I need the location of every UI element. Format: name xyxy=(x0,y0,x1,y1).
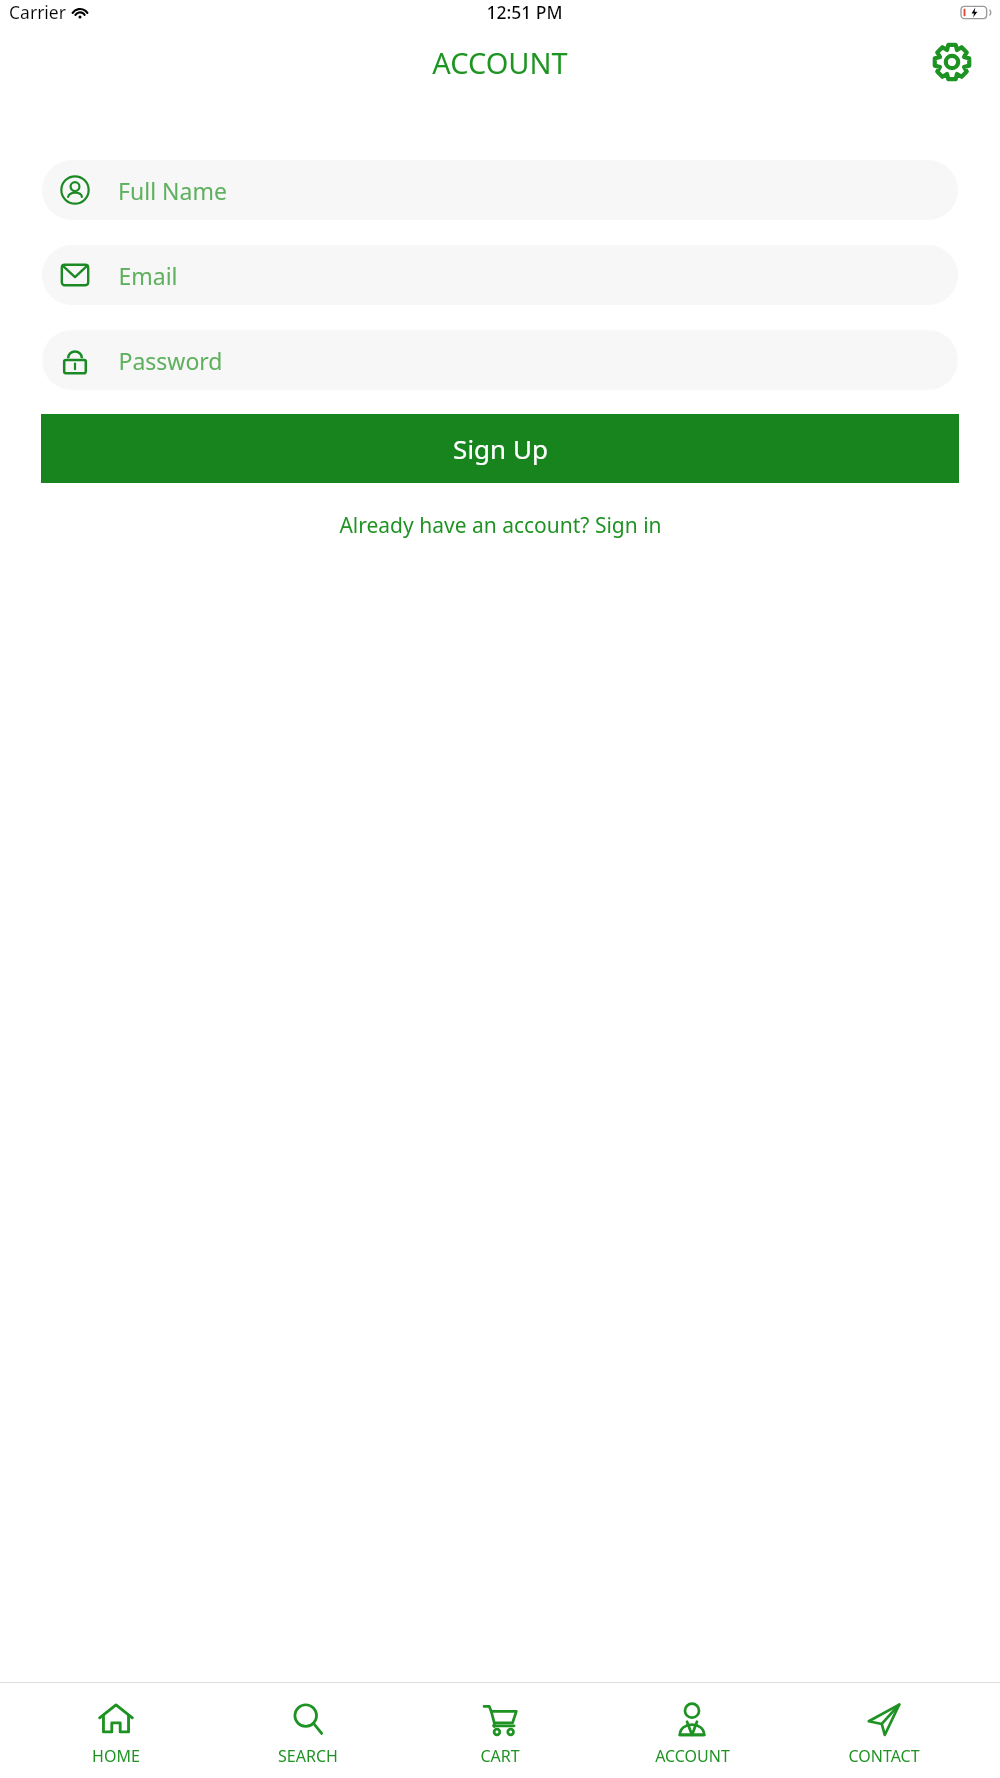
button[interactable]: Password xyxy=(42,330,958,390)
button[interactable]: HOME xyxy=(40,1694,192,1767)
staticText: SEARCH xyxy=(278,1745,338,1767)
button[interactable]: SEARCH xyxy=(232,1694,384,1767)
staticText: CART xyxy=(480,1745,520,1767)
staticText: Email xyxy=(118,260,178,291)
staticText: CONTACT xyxy=(848,1745,920,1767)
button[interactable]: Email xyxy=(42,245,958,305)
staticText: HOME xyxy=(92,1745,140,1767)
staticText: Full Name xyxy=(118,175,227,206)
button[interactable]: Sign Up xyxy=(41,414,959,483)
staticText: ACCOUNT xyxy=(655,1745,730,1767)
button[interactable]: Settings xyxy=(926,36,978,88)
button[interactable]: ACCOUNT xyxy=(616,1694,768,1767)
button[interactable]: CONTACT xyxy=(808,1694,960,1767)
staticText: Carrier xyxy=(9,0,66,24)
button[interactable]: CART xyxy=(424,1694,576,1767)
staticText: Already have an account? Sign in xyxy=(339,511,662,540)
staticText: ACCOUNT xyxy=(432,43,568,82)
button[interactable]: Full Name xyxy=(42,160,958,220)
staticText: 12:51 PM xyxy=(486,0,563,24)
button[interactable]: Already have an account? Sign in xyxy=(329,507,672,544)
staticText: Sign Up xyxy=(453,431,548,466)
staticText: Password xyxy=(118,345,223,376)
